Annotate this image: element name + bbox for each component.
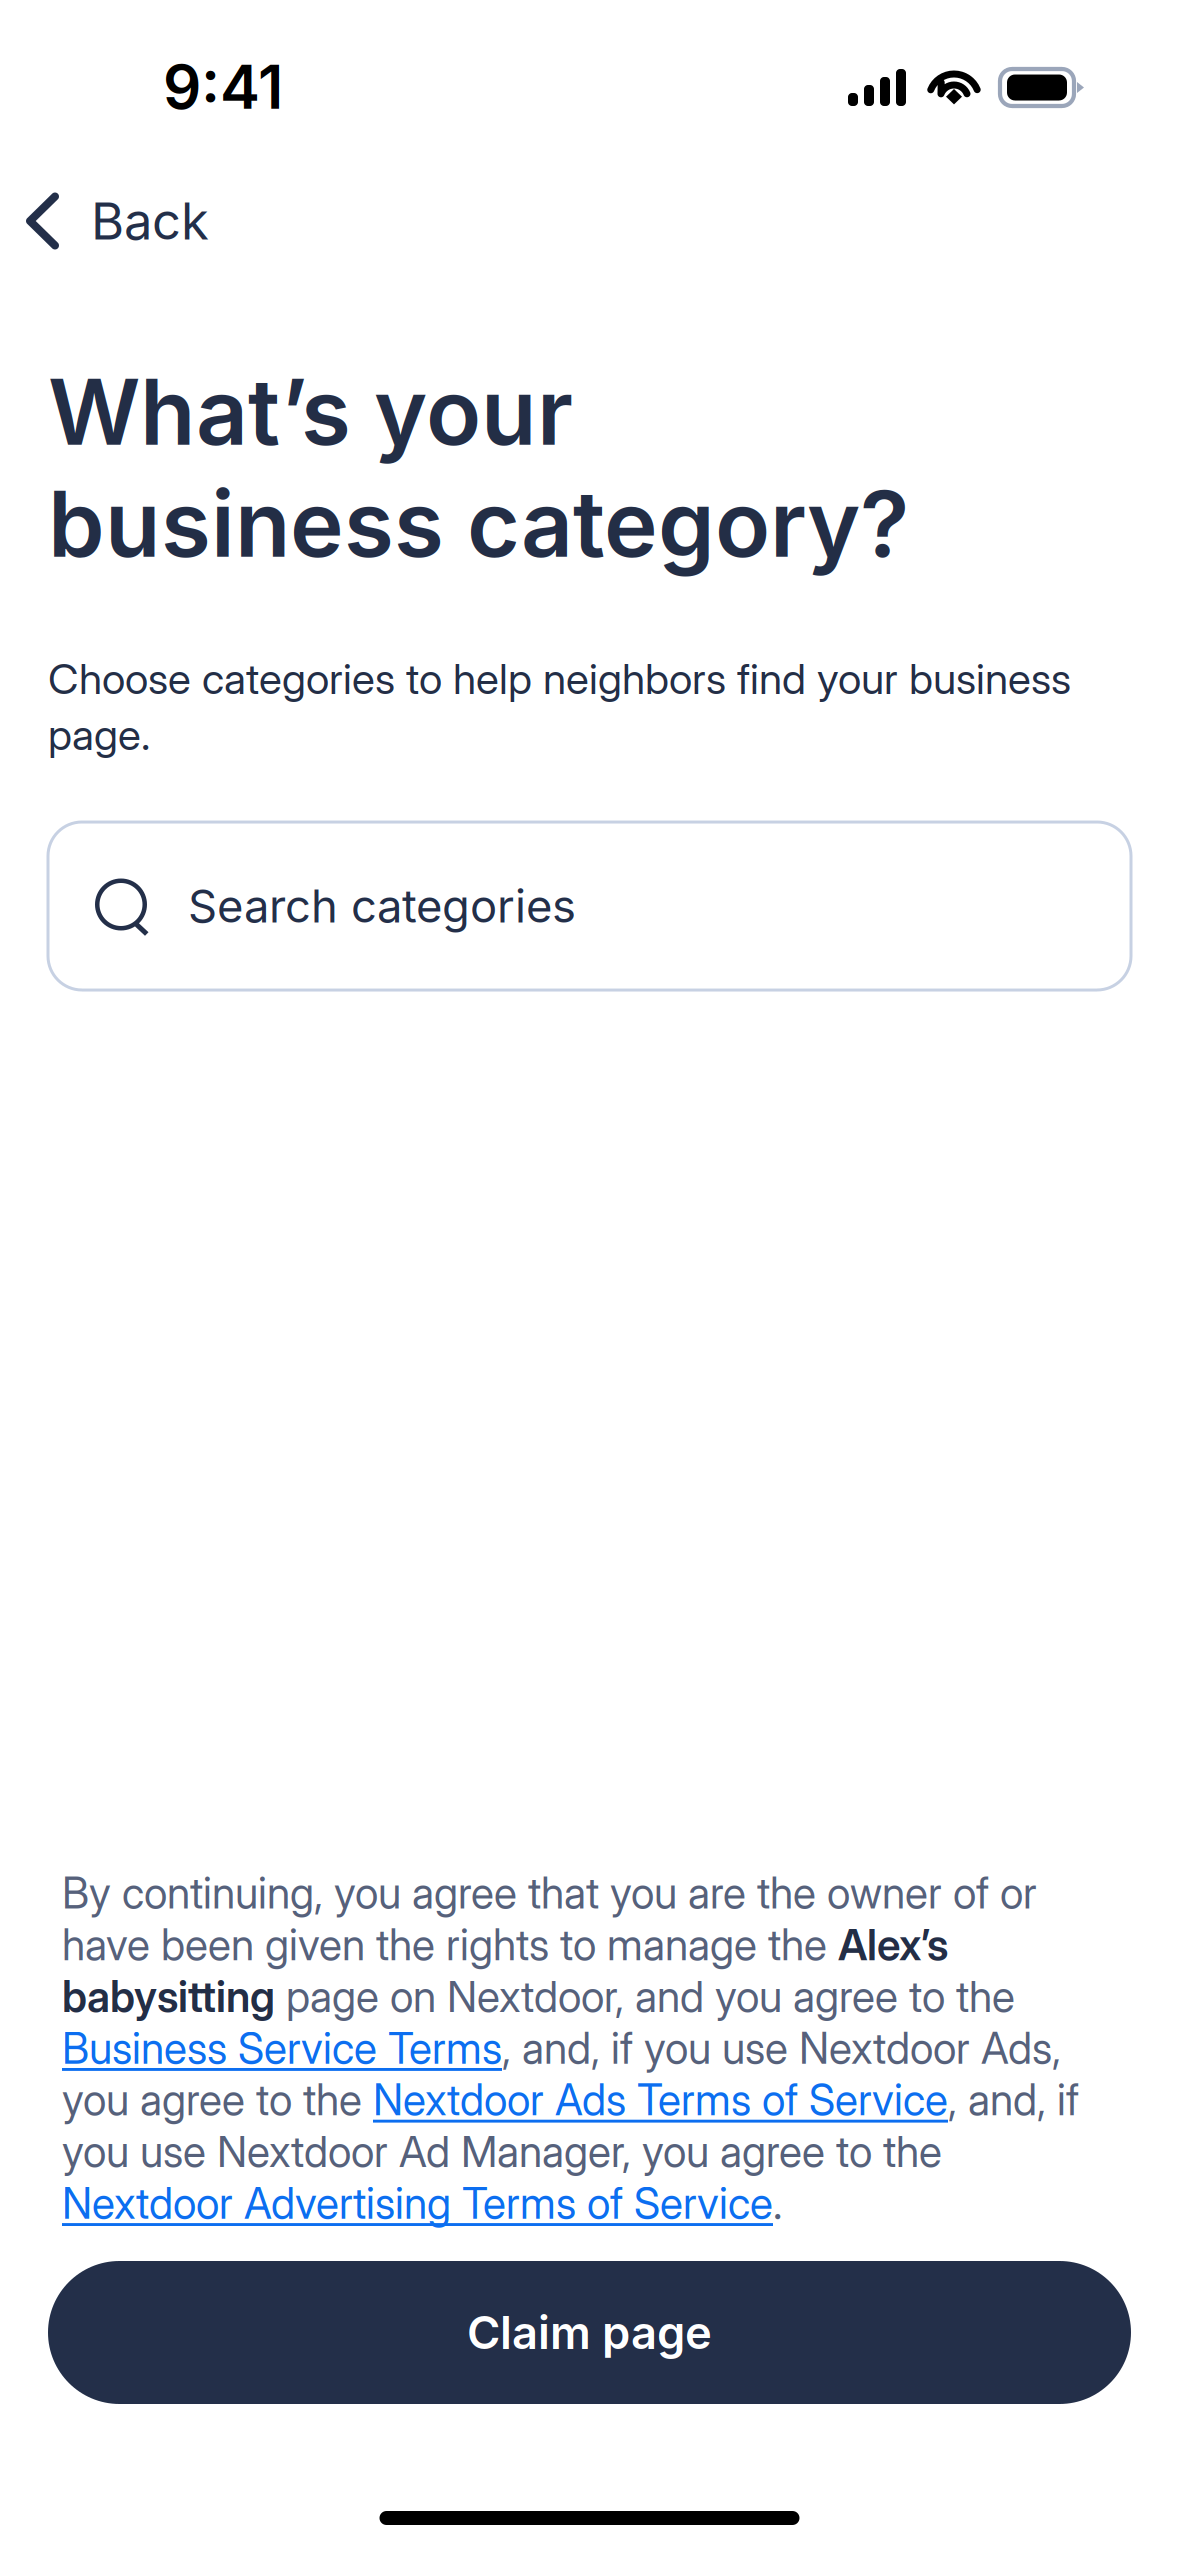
- staticText: 9:41: [163, 51, 283, 123]
- staticText: .: [773, 2178, 782, 2229]
- staticText: Back: [91, 190, 209, 252]
- button[interactable]: Back: [0, 106, 241, 279]
- staticText: you use Nextdoor Ad Manager, you agree t…: [62, 2126, 942, 2177]
- staticText: Search categories: [188, 879, 576, 933]
- staticText: Alex’s: [838, 1919, 948, 1970]
- staticText: , and, if: [948, 2074, 1079, 2126]
- staticText: Nextdoor Ads Terms of Service: [373, 2074, 948, 2126]
- staticText: have been given the rights to manage the: [62, 1919, 838, 1970]
- staticText: page on Nextdoor, and you agree to the: [275, 1971, 1015, 2022]
- staticText: By continuing, you agree that you are th…: [62, 1867, 1037, 1919]
- staticText: Nextdoor Advertising Terms of Service: [62, 2178, 773, 2229]
- staticText: babysitting: [62, 1971, 275, 2022]
- staticText: business category?: [48, 469, 909, 579]
- button[interactable]: Claim page: [48, 2261, 1131, 2404]
- button[interactable]: Search categories: [48, 822, 1131, 990]
- staticText: What’s your: [48, 357, 573, 467]
- staticText: , and, if you use Nextdoor Ads,: [502, 2022, 1061, 2074]
- staticText: Claim page: [467, 2305, 712, 2360]
- staticText: Business Service Terms: [62, 2022, 502, 2074]
- staticText: Choose categories to help neighbors find…: [48, 653, 1071, 704]
- staticText: page.: [48, 709, 150, 760]
- staticText: you agree to the: [62, 2074, 373, 2126]
